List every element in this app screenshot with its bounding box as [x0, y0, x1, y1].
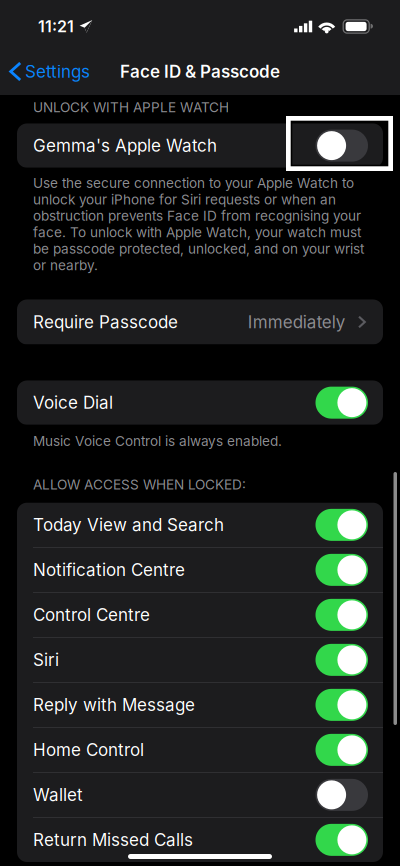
button[interactable]: Voice Dial	[17, 380, 383, 425]
button[interactable]: Home Control	[17, 728, 383, 772]
staticText: Siri	[33, 650, 59, 670]
button[interactable]: Siri	[17, 638, 383, 682]
button[interactable]: On	[315, 599, 368, 631]
button[interactable]: On	[315, 734, 368, 766]
staticText: Reply with Message	[33, 695, 195, 715]
staticText: Voice Dial	[33, 392, 113, 413]
staticText: Control Centre	[33, 605, 150, 625]
button[interactable]: Reply with Message	[17, 683, 383, 727]
staticText: Notification Centre	[33, 560, 185, 580]
button[interactable]: On	[315, 387, 368, 419]
button[interactable]: On	[315, 509, 368, 541]
button[interactable]: Today View and Search	[17, 503, 383, 547]
button[interactable]: Gemma's Apple Watch	[17, 123, 383, 168]
button[interactable]: Off	[315, 779, 368, 811]
button[interactable]: Require Passcode	[17, 299, 383, 344]
staticText: Gemma's Apple Watch	[33, 135, 217, 156]
button[interactable]: On	[315, 644, 368, 676]
button[interactable]: On	[315, 689, 368, 721]
staticText: Face ID & Passcode	[120, 61, 280, 82]
staticText: Wallet	[33, 785, 83, 805]
button[interactable]: Settings	[0, 54, 90, 89]
staticText: Home Control	[33, 740, 144, 760]
staticText: Today View and Search	[33, 515, 224, 535]
staticText: ALLOW ACCESS WHEN LOCKED:	[33, 476, 246, 493]
button[interactable]: Wallet	[17, 773, 383, 817]
staticText: Immediately	[248, 312, 346, 332]
staticText: Settings	[25, 61, 90, 82]
button[interactable]: Notification Centre	[17, 548, 383, 592]
staticText: Use the secure connection to your Apple …	[33, 175, 364, 273]
button[interactable]: On	[315, 824, 368, 856]
staticText: UNLOCK WITH APPLE WATCH	[33, 99, 229, 115]
staticText: Music Voice Control is always enabled.	[33, 433, 282, 449]
staticText: Return Missed Calls	[33, 830, 193, 850]
button[interactable]: On	[315, 554, 368, 586]
button[interactable]: Return Missed Calls	[17, 818, 383, 862]
staticText: Require Passcode	[33, 312, 178, 332]
staticText: 11:21	[38, 17, 74, 36]
button[interactable]: Off	[315, 130, 368, 162]
button[interactable]: Control Centre	[17, 593, 383, 637]
